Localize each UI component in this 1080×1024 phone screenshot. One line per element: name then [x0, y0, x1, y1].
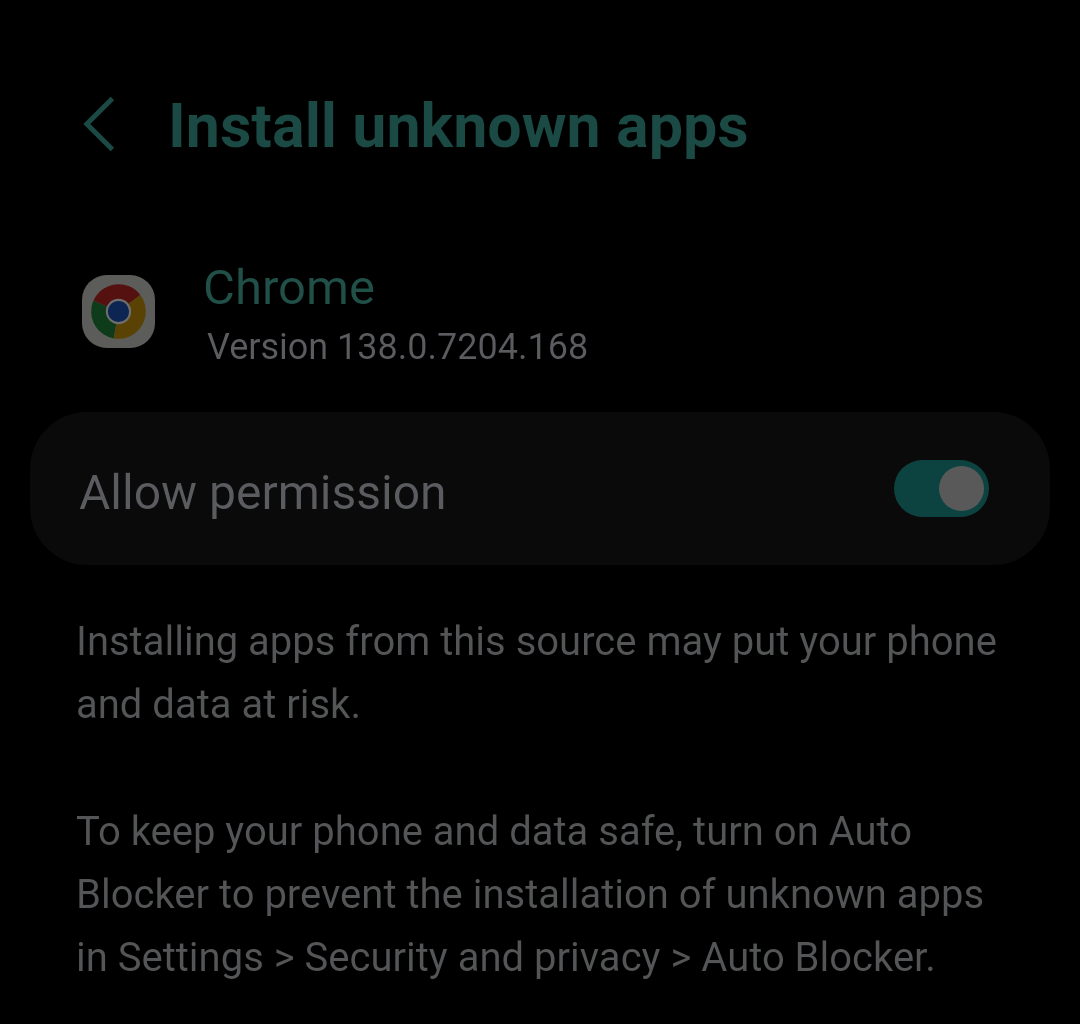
button[interactable]: Navigate up: [77, 78, 169, 170]
staticText: Install unknown apps: [168, 90, 749, 161]
staticText: Installing apps from this source may put…: [76, 605, 1016, 731]
staticText: Allow permission: [79, 464, 895, 520]
staticText: Version 138.0.7204.168: [207, 326, 589, 368]
button[interactable]: Allow permission: [30, 412, 1050, 565]
staticText: Chrome: [203, 259, 375, 316]
button[interactable]: Allow permission: [894, 460, 989, 517]
staticText: To keep your phone and data safe, turn o…: [76, 795, 1016, 984]
